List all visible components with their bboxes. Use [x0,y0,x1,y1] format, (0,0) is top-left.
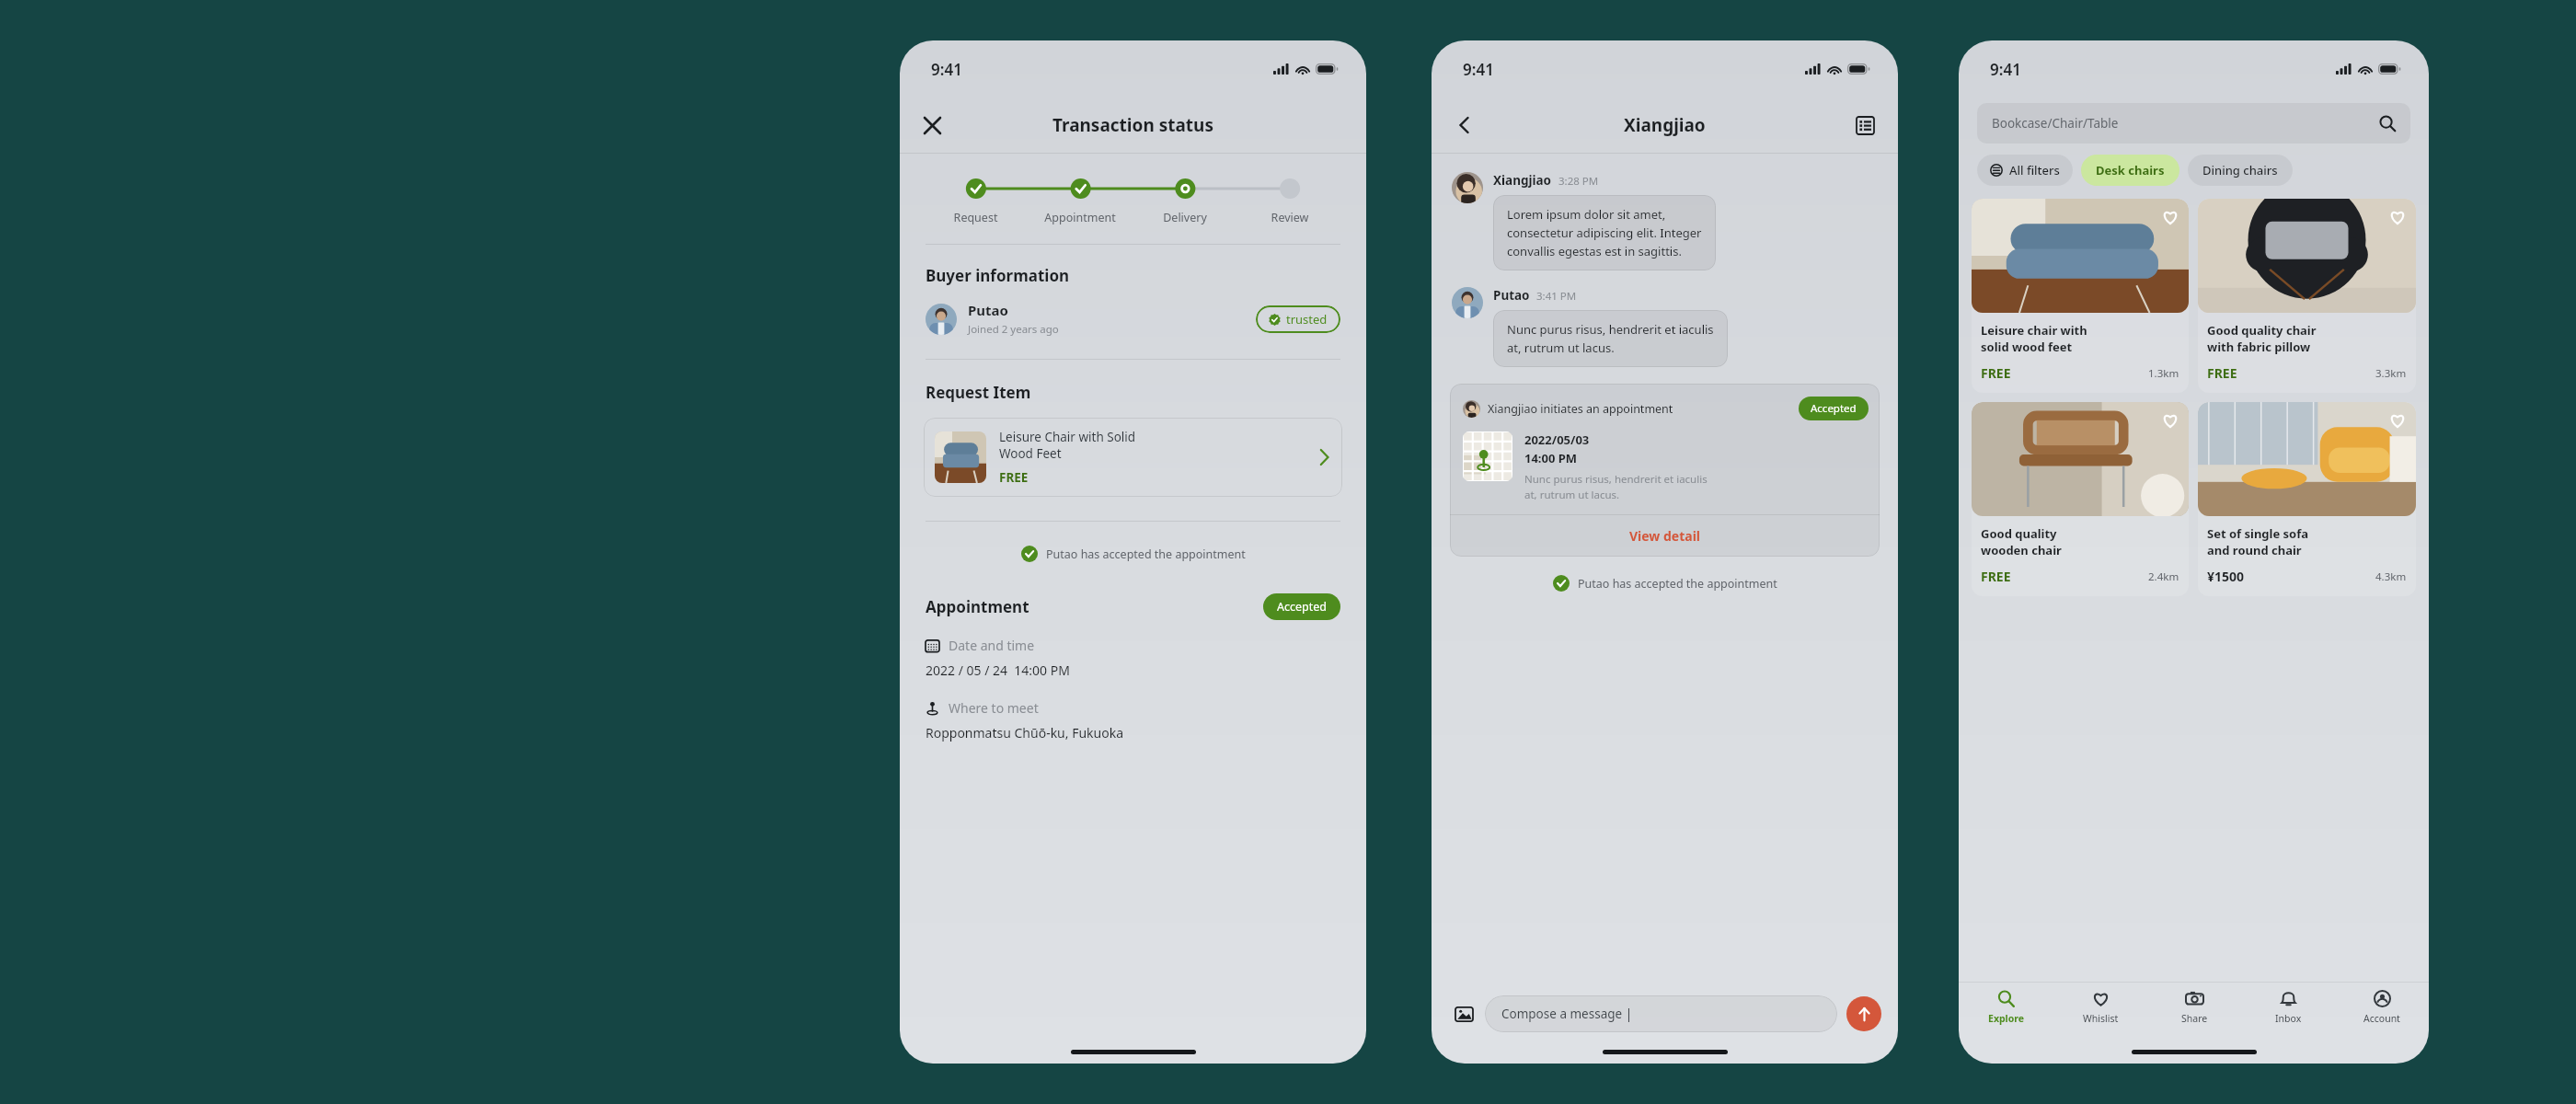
staticText: Date and time [949,637,1035,654]
staticText: Leisure chair with solid wood feet [1981,322,2087,355]
button[interactable]: All filters [1977,155,2073,186]
staticText: Where to meet [949,699,1039,717]
staticText: Dining chairs [2202,162,2278,178]
button[interactable]: Whislist [2053,990,2147,1040]
button[interactable]: trusted [1256,305,1340,333]
staticText: trusted [1286,311,1328,328]
button[interactable]: Send [1846,996,1881,1031]
button[interactable]: Add to wishlist [2386,206,2409,228]
staticText: 1.3km [2148,366,2179,381]
staticText: Buyer information [926,265,1070,286]
staticText: All filters [2009,162,2060,178]
staticText: 3.3km [2375,366,2407,381]
staticText: FREE [999,469,1029,486]
staticText: Inbox [2275,1012,2302,1025]
staticText: Accepted [1811,401,1857,416]
staticText: 3:28 PM [1558,174,1599,189]
staticText: Desk chairs [2096,162,2165,178]
staticText: Request [924,210,1028,225]
staticText: 9:41 [1463,59,1494,80]
button[interactable]: Close [913,106,951,144]
staticText: Putao [968,301,1008,319]
staticText: 9:41 [1990,59,2021,80]
button[interactable]: Add to wishlist [2159,206,2181,228]
staticText: Nunc purus risus, hendrerit et iaculis a… [1524,472,1708,501]
staticText: Set of single sofa and round chair [2207,525,2309,558]
staticText: Explore [1988,1012,2025,1025]
staticText: 2022 / 05 / 24 14:00 PM [926,661,1070,679]
staticText: 2.4km [2148,569,2179,584]
staticText: Nunc purus risus, hendrerit et iaculis a… [1507,321,1714,356]
staticText: Compose a message | [1501,1006,1633,1022]
staticText: ¥1500 [2207,568,2375,585]
staticText: Appointment [1028,210,1133,225]
button[interactable]: Accepted [1263,593,1340,620]
button[interactable]: Share [2147,990,2241,1040]
staticText: Account [2363,1012,2400,1025]
staticText: Xiangjiao [1624,113,1706,137]
staticText: FREE [1981,568,2148,585]
button[interactable]: Putao [926,301,1340,337]
staticText: Xiangjiao [1493,172,1552,189]
staticText: Ropponmatsu Chūō-ku, Fukuoka [926,724,1124,742]
staticText: FREE [1981,364,2148,382]
staticText: FREE [2207,364,2375,382]
staticText: View detail [1629,527,1701,545]
button[interactable]: Account [2335,990,2429,1040]
button[interactable]: Add to wishlist [2159,409,2181,431]
button[interactable]: Dining chairs [2188,155,2293,186]
staticText: Putao has accepted the appointment [1046,546,1246,562]
button[interactable]: Attach image [1448,998,1479,1029]
staticText: Good quality chair with fabric pillow [2207,322,2317,355]
staticText: Bookcase/Chair/Table [1992,115,2379,132]
staticText: Request Item [926,382,1031,403]
button[interactable]: View detail [1450,515,1880,557]
staticText: 14:00 PM [1524,450,1578,466]
button[interactable]: Add to wishlist [1972,199,2189,393]
staticText: Joined 2 years ago [968,322,1059,337]
button[interactable]: Desk chairs [2081,155,2179,186]
staticText: Putao has accepted the appointment [1578,576,1777,592]
staticText: Putao [1493,287,1530,304]
staticText: 2022/05/03 [1524,431,1590,448]
staticText: 3:41 PM [1536,289,1577,304]
button[interactable]: Order details [1846,107,1883,144]
staticText: Share [2181,1012,2208,1025]
staticText: Transaction status [1052,113,1213,137]
staticText: Appointment [926,596,1263,617]
staticText: 9:41 [931,59,962,80]
staticText: Review [1237,210,1342,225]
button[interactable]: Add to wishlist [1972,402,2189,596]
button[interactable]: Inbox [2241,990,2335,1040]
button[interactable]: Xiangjiao initiates an appointment [1450,384,1880,557]
button[interactable]: Add to wishlist [2198,402,2416,596]
staticText: Whislist [2083,1012,2119,1025]
staticText: 4.3km [2375,569,2407,584]
staticText: Xiangjiao initiates an appointment [1488,401,1799,417]
staticText: Lorem ipsum dolor sit amet, consectetur … [1507,206,1702,259]
button[interactable]: Leisure Chair with Solid Wood Feet [924,418,1342,497]
staticText: Accepted [1277,599,1327,615]
button[interactable]: Explore [1959,990,2053,1040]
button[interactable]: Add to wishlist [2198,199,2416,393]
staticText: Good quality wooden chair [1981,525,2062,558]
staticText: Leisure Chair with Solid Wood Feet [999,429,1136,462]
button[interactable]: Back [1446,107,1483,144]
button[interactable]: Add to wishlist [2386,409,2409,431]
button[interactable]: Compose a message | [1485,995,1837,1032]
button[interactable]: Bookcase/Chair/Table [1977,103,2410,144]
staticText: Delivery [1133,210,1237,225]
